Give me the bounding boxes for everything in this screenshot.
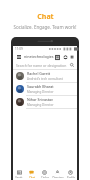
staticText: Managing Director [27, 103, 54, 107]
staticText: Android's tech consultant [27, 77, 63, 81]
staticText: Directory [52, 176, 64, 178]
button[interactable]: Chat [25, 168, 38, 180]
staticText: Feeds [15, 176, 23, 178]
button[interactable]: Notifications [62, 54, 68, 60]
button[interactable]: Feeds [13, 168, 25, 180]
button[interactable]: Saurabh Bharat [13, 83, 77, 95]
staticText: Saurabh Bharat [27, 84, 54, 89]
staticText: Search for name or designation [16, 63, 67, 68]
staticText: Rachel Garett [27, 71, 51, 76]
button[interactable]: ninetechnologies [24, 54, 54, 59]
staticText: Circles [41, 176, 49, 178]
staticText: Managing Director [27, 90, 54, 94]
staticText: Chat [29, 176, 35, 178]
button[interactable]: Directory [51, 168, 64, 180]
staticText: Chat [37, 12, 54, 22]
button[interactable]: Nihar Srivastav [13, 96, 77, 108]
staticText: Profile [67, 176, 75, 178]
button[interactable]: Circles [38, 168, 51, 180]
button[interactable]: Profile [64, 168, 77, 180]
staticText: Nihar Srivastav [27, 97, 54, 102]
button[interactable]: Apps [70, 54, 74, 60]
button[interactable]: Menu [16, 54, 22, 60]
staticText: 11:09 [15, 47, 23, 51]
button[interactable]: Search for name or designation [13, 61, 77, 69]
staticText: Socialize. Engage. Team work! [13, 24, 77, 30]
button[interactable]: Notes [54, 54, 60, 60]
button[interactable]: Rachel Garett [13, 70, 77, 82]
